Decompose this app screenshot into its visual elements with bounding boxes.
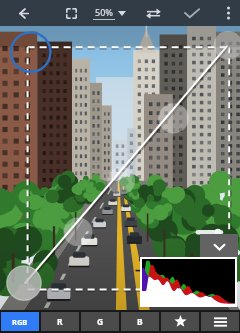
staticText: 50% [95,6,113,18]
button[interactable]: RGB [1,312,39,331]
staticText: G [97,316,104,328]
button[interactable]: Menu [201,312,239,331]
button[interactable]: Compare before and after [139,0,167,26]
staticText: B [137,316,143,328]
button[interactable]: Apply [177,0,207,26]
button[interactable]: G [81,312,119,331]
button[interactable]: Collapse histogram [200,234,238,259]
button[interactable]: B [121,312,159,331]
staticText: R [57,316,63,328]
button[interactable]: Back [0,0,46,26]
button[interactable]: Histogram [142,259,235,305]
button[interactable]: Fit to screen [58,0,84,26]
button[interactable]: R [41,312,79,331]
button[interactable]: 50% [90,4,129,22]
button[interactable]: Presets [161,312,199,331]
button[interactable]: More options [216,0,240,26]
staticText: RGB [12,317,28,327]
